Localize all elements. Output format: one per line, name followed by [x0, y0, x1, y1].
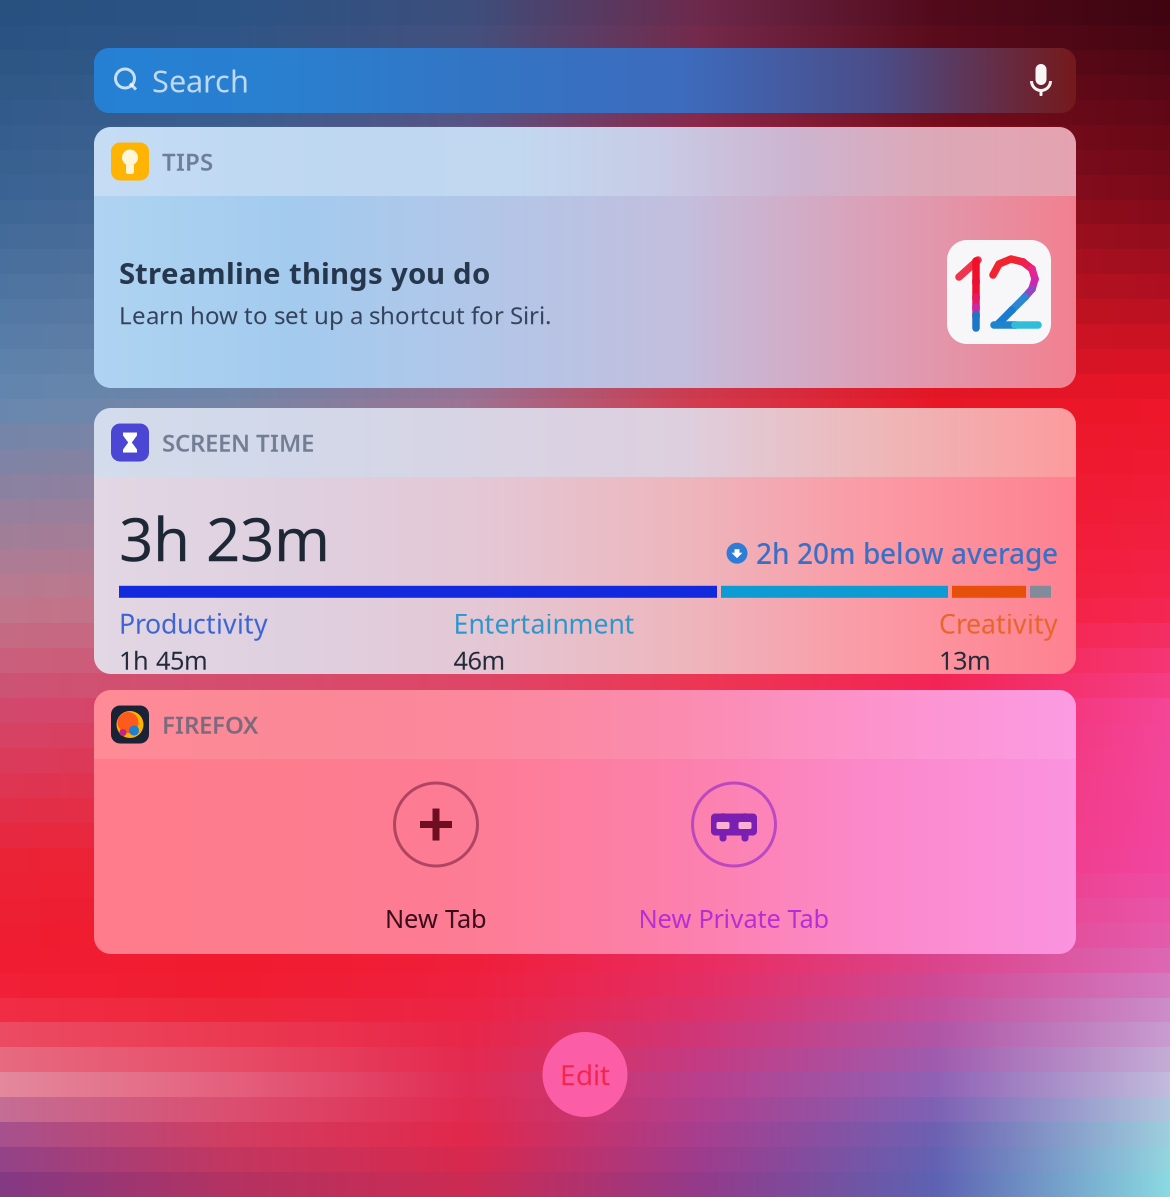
staticText: 2h 20m below average — [756, 535, 1058, 572]
staticText: New Tab — [385, 901, 487, 935]
button[interactable]: SCREEN TIME — [94, 408, 1076, 674]
staticText: TIPS — [162, 146, 213, 177]
staticText: New Private Tab — [638, 901, 829, 935]
button[interactable]: TIPS — [94, 127, 1076, 388]
staticText: 13m — [939, 643, 991, 677]
staticText: Search — [152, 60, 249, 101]
button[interactable]: New Private Tab — [585, 783, 883, 935]
staticText: Streamline things you do — [119, 253, 490, 292]
staticText: 1h 45m — [119, 643, 208, 677]
staticText: 46m — [453, 643, 505, 677]
staticText: Learn how to set up a shortcut for Siri. — [119, 299, 551, 331]
staticText: FIREFOX — [162, 709, 258, 740]
button[interactable]: Edit — [542, 1032, 627, 1117]
button[interactable]: New Tab — [287, 783, 585, 935]
button[interactable]: Search — [94, 48, 1076, 113]
staticText: Edit — [560, 1056, 610, 1093]
staticText: Creativity — [939, 606, 1058, 641]
staticText: Productivity — [119, 606, 268, 641]
staticText: 3h 23m — [119, 498, 330, 578]
staticText: Entertainment — [453, 606, 634, 641]
staticText: SCREEN TIME — [162, 427, 314, 458]
